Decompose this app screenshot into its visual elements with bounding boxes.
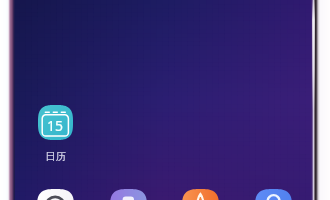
button[interactable]: Phone [255,189,292,200]
button[interactable]: Clock [182,189,219,200]
staticText: 15 [47,116,64,135]
button[interactable]: Gallery [110,189,147,200]
button[interactable]: Calendar [38,105,73,140]
button[interactable]: Camera [37,189,74,200]
staticText: 日历 [45,150,66,163]
